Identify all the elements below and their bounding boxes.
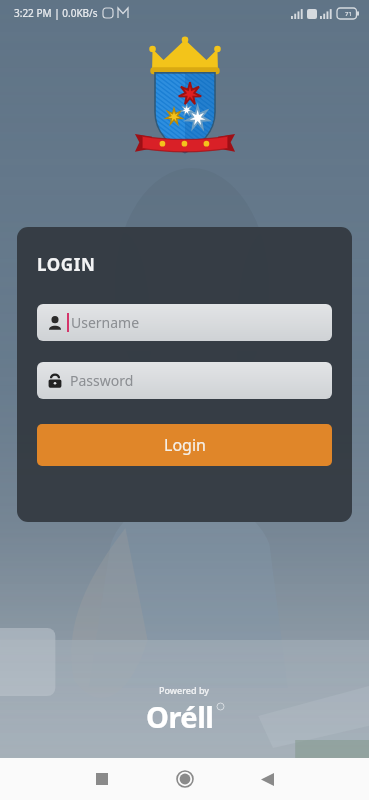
staticText: 71	[345, 10, 352, 18]
staticText: Powered by	[159, 684, 210, 696]
button[interactable]: Home	[143, 758, 226, 800]
button[interactable]: Back	[226, 758, 309, 800]
staticText: LOGIN	[37, 253, 96, 276]
button[interactable]: Username	[37, 304, 332, 341]
staticText: Login	[164, 434, 206, 456]
button[interactable]: Recent apps	[60, 758, 143, 800]
staticText: Username	[71, 313, 140, 332]
staticText: Password	[70, 371, 134, 390]
button[interactable]: Login	[37, 424, 332, 466]
staticText: Oréll	[146, 697, 214, 736]
staticText: 3:22 PM | 0.0KB/s	[14, 6, 98, 20]
button[interactable]: Password	[37, 362, 332, 399]
